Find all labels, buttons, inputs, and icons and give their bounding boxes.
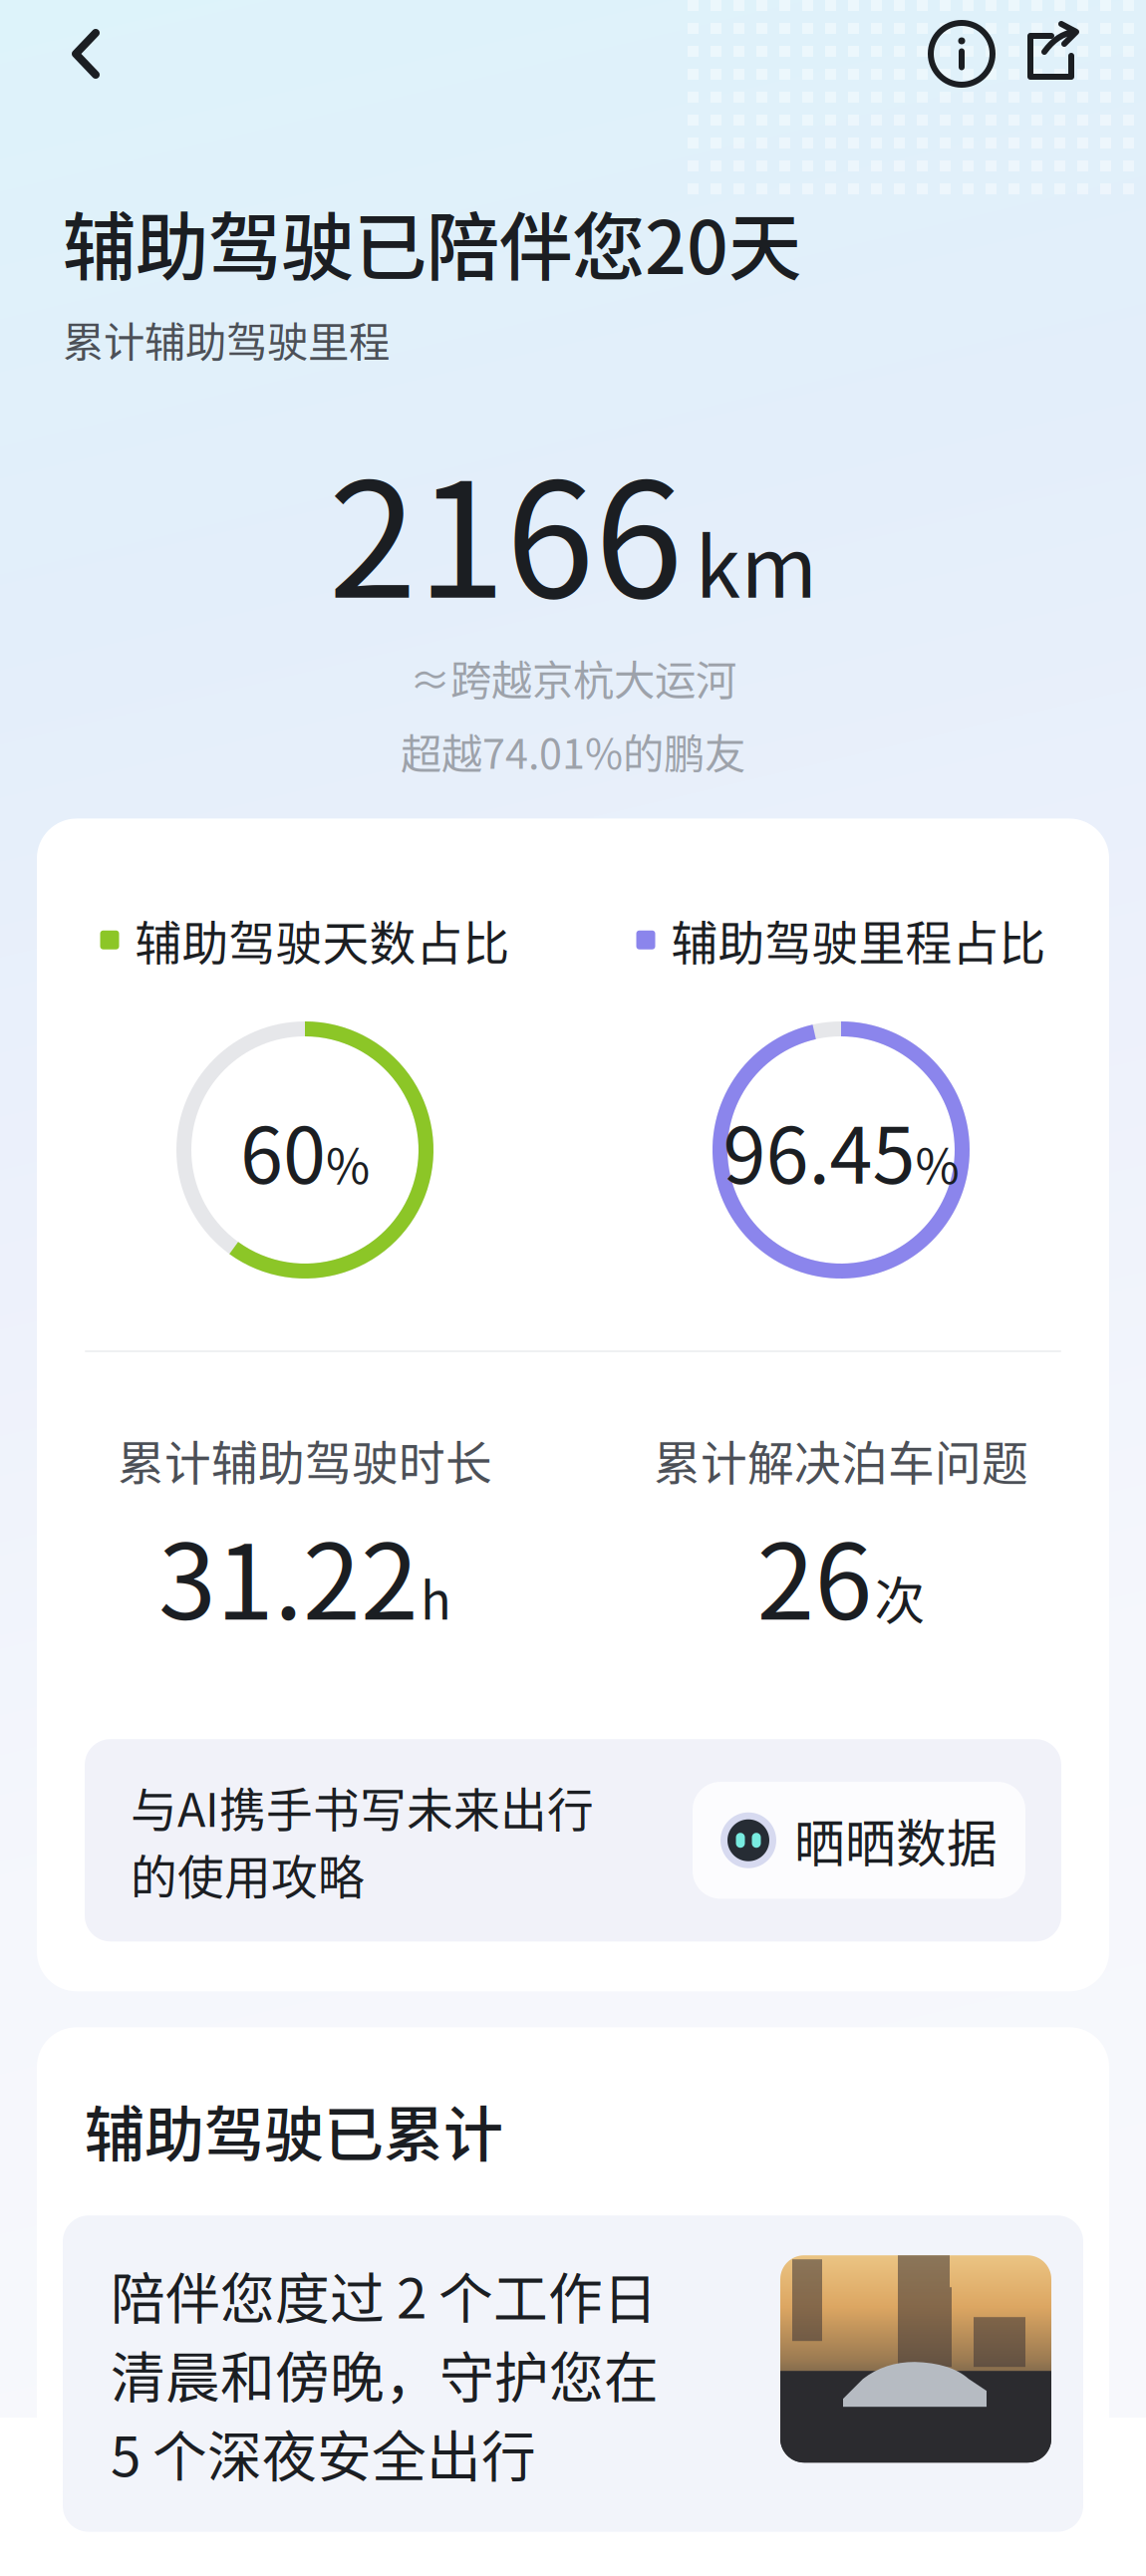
staticText: 累计辅助驾驶时长 [118,1426,492,1493]
staticText: 2166 [328,413,683,643]
staticText: % [915,1128,959,1197]
staticText: 陪伴您度过 2 个工作日清晨和傍晚，守护您在 5 个深夜安全出行 [111,2255,659,2492]
button[interactable]: Share [1006,9,1096,99]
staticText: 辅助驾驶天数占比 [135,906,510,974]
staticText: km [695,502,818,621]
staticText: 辅助驾驶里程占比 [671,906,1046,974]
button[interactable]: Info [917,9,1006,99]
staticText: 超越74.01%的鹏友 [401,721,745,781]
staticText: 累计辅助驾驶里程 [63,309,390,369]
staticText: 辅助驾驶已陪伴您20天 [63,189,801,295]
staticText: 晒晒数据 [794,1804,998,1877]
staticText: 辅助驾驶已累计 [85,2087,503,2174]
button[interactable]: 晒晒数据 [693,1782,1025,1899]
staticText: 60 [240,1094,326,1206]
staticText: h [421,1561,451,1634]
staticText: 次 [874,1561,925,1634]
staticText: 26 [757,1499,872,1649]
staticText: 累计解决泊车问题 [654,1426,1028,1493]
button[interactable]: Back [0,19,134,89]
staticText: % [326,1128,370,1197]
staticText: 96.45 [723,1094,915,1206]
staticText: 与AI携手书写未来出行的使用攻略 [131,1773,594,1908]
staticText: ≈跨越京杭大运河 [410,647,736,707]
staticText: 31.22 [158,1499,419,1649]
